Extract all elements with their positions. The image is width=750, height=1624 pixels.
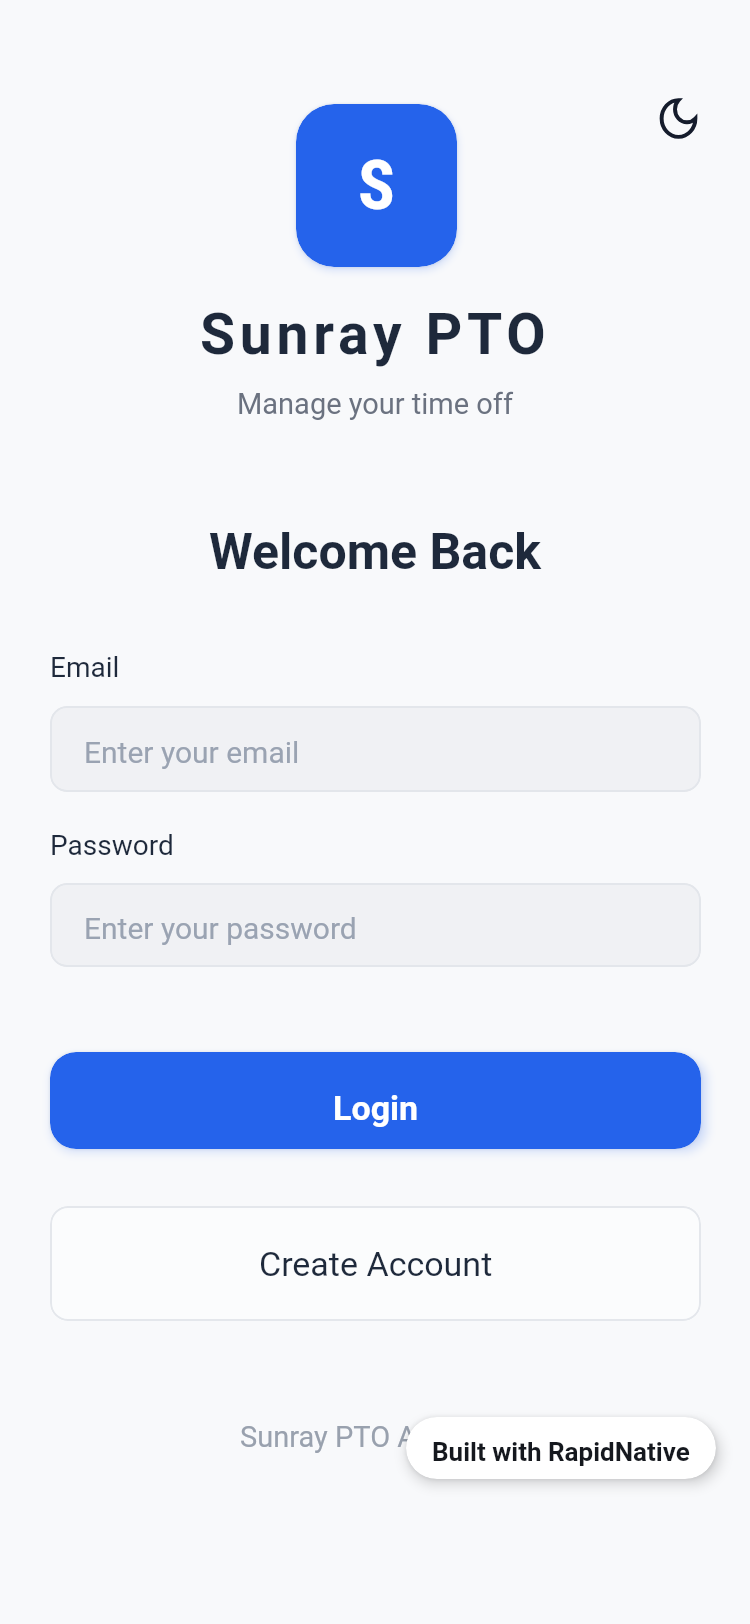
staticText: Login — [333, 1088, 419, 1128]
staticText: Password — [50, 829, 174, 862]
staticText: Manage your time off — [237, 387, 514, 421]
staticText: Sunray PTO — [200, 301, 551, 368]
staticText: Create Account — [259, 1244, 493, 1284]
button[interactable]: Enter your password — [50, 883, 701, 967]
staticText: Email — [50, 651, 120, 684]
button[interactable] — [648, 88, 708, 148]
button[interactable]: Built with RapidNative — [406, 1417, 716, 1479]
button[interactable]: Enter your email — [50, 706, 701, 792]
staticText: Welcome Back — [209, 523, 541, 582]
staticText: Sunray PTO App v1.0 — [240, 1420, 511, 1454]
staticText: Enter your password — [84, 911, 357, 946]
staticText: Built with RapidNative — [432, 1437, 690, 1467]
staticText: S — [358, 146, 395, 226]
staticText: Enter your email — [84, 735, 300, 770]
button[interactable]: Login — [50, 1052, 701, 1149]
button[interactable]: Create Account — [50, 1206, 701, 1321]
